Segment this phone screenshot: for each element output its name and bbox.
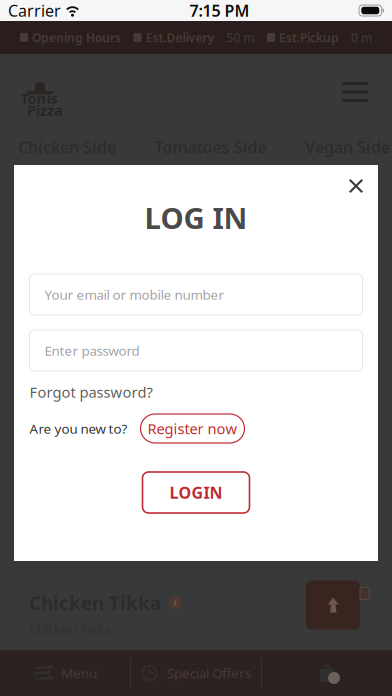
button[interactable]: Vegan Side [305,136,390,158]
staticText: Carrier [8,0,61,21]
button[interactable]: Cart [262,650,392,696]
staticText: 7:15 PM [189,0,249,21]
staticText: Pizza [27,100,63,120]
button[interactable]: Menu [332,72,378,112]
staticText: Est.Pickup [279,29,339,45]
staticText: 0 m [351,29,372,45]
button[interactable]: Menu [0,650,130,696]
staticText: 50 m [226,29,254,45]
staticText: Tomatoes Side [154,136,266,158]
button[interactable]: Tomatoes Side [154,136,266,158]
staticText: LOGIN [169,482,222,503]
button[interactable]: Close [340,170,372,202]
staticText: Est.Delivery [145,29,214,45]
button[interactable]: Chicken Side [18,136,116,158]
staticText: Tonis [20,88,57,108]
button[interactable]: Register now [140,414,244,443]
button[interactable]: Special Offers [131,650,261,696]
staticText: Your email or mobile number [44,286,224,303]
staticText: Forgot password? [29,382,152,402]
staticText: Register now [147,419,237,438]
staticText: Special Offers [167,664,251,682]
staticText: Chicken Tikka [29,591,161,615]
button[interactable]: LOGIN [142,472,249,513]
staticText: Enter password [44,342,139,359]
staticText: Menu [61,664,97,682]
button[interactable]: Forgot password? [29,382,152,402]
staticText: LOG IN [144,198,247,237]
staticText: Chicken Side [18,136,116,158]
staticText: Are you new to? [29,420,127,437]
staticText: Opening Hours [32,29,121,45]
staticText: Vegan Side [305,136,390,158]
